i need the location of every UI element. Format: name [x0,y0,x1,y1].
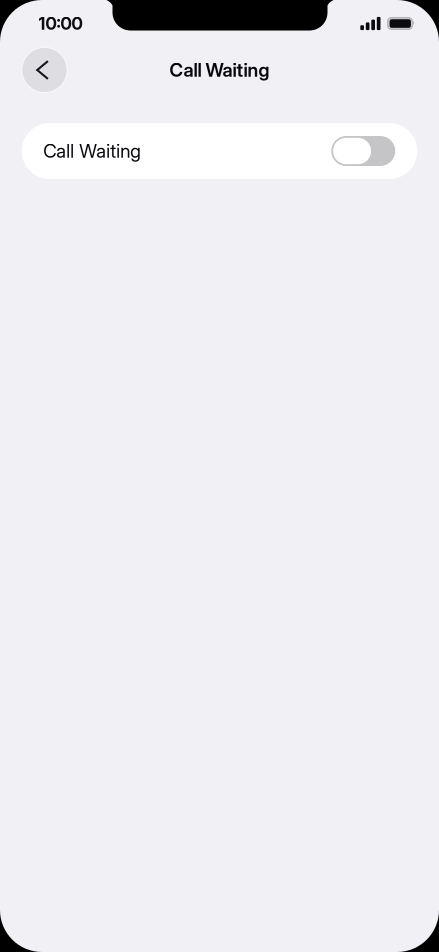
staticText: 10:00 [38,13,82,34]
button[interactable]: Call Waiting [22,123,417,179]
button[interactable]: Back [21,47,67,93]
staticText: Call Waiting [169,59,269,81]
staticText: Call Waiting [43,140,141,162]
